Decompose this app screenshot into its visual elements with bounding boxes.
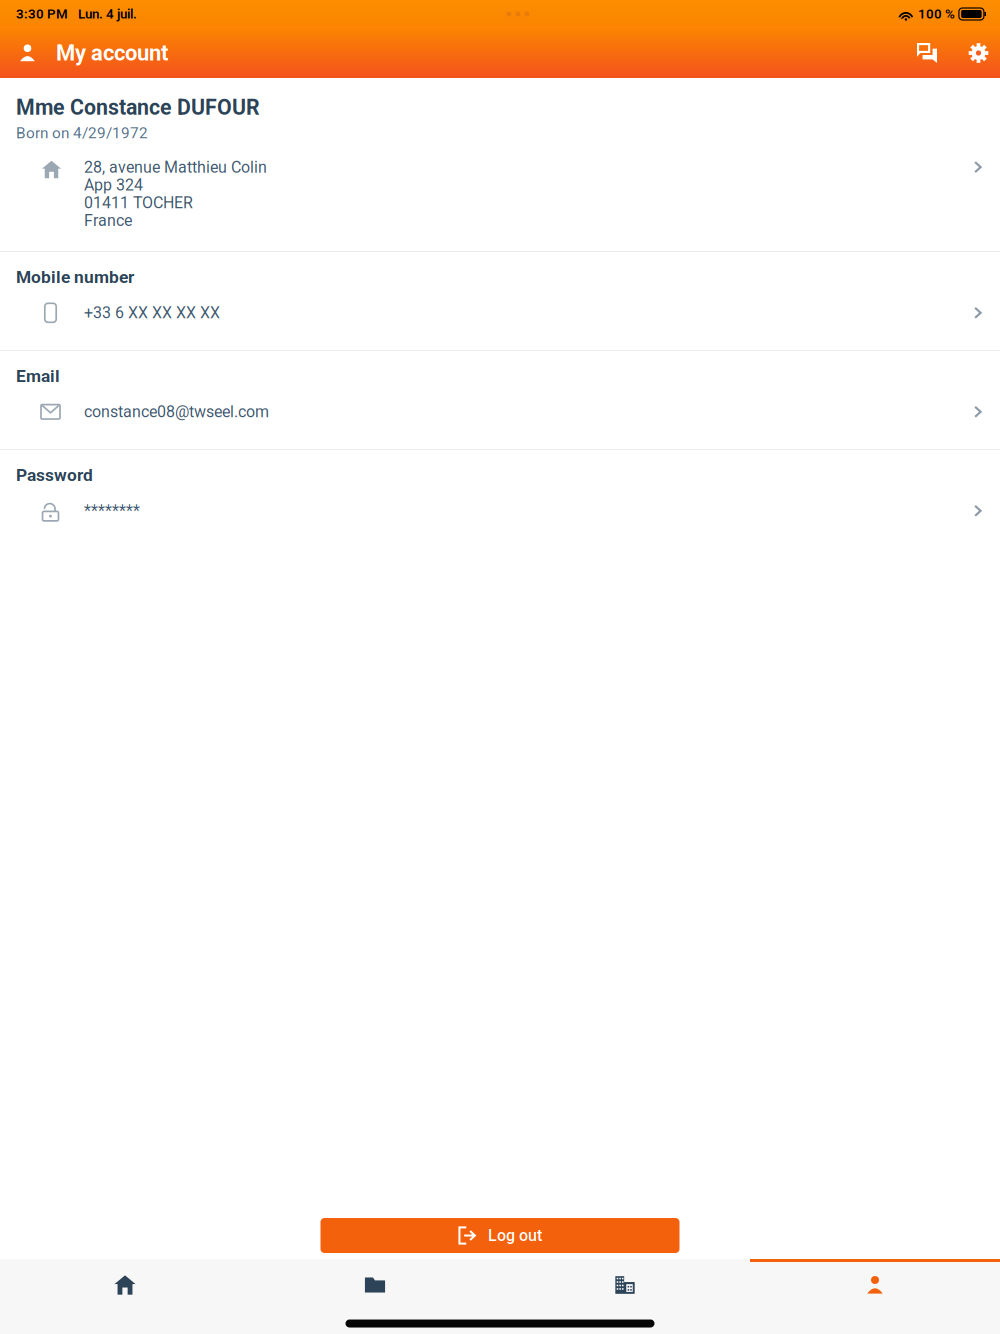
staticText: Password xyxy=(16,465,93,485)
staticText: 01411 TOCHER xyxy=(84,193,193,212)
staticText: France xyxy=(84,211,132,230)
staticText: Mobile number xyxy=(16,267,134,287)
staticText: 28, avenue Matthieu Colin xyxy=(84,158,267,177)
button[interactable]: Log out xyxy=(320,1218,679,1253)
staticText: constance08@twseel.com xyxy=(84,402,269,421)
staticText: 3:30 PM xyxy=(16,6,68,22)
staticText: +33 6 XX XX XX XX xyxy=(84,303,220,322)
button[interactable]: Password xyxy=(0,450,1000,548)
staticText: App 324 xyxy=(84,176,143,195)
button[interactable]: Settings xyxy=(957,28,1000,78)
button[interactable]: Home xyxy=(0,1259,250,1311)
button[interactable]: Email xyxy=(0,351,1000,449)
button[interactable]: 28, avenue Matthieu Colin xyxy=(0,142,1000,230)
staticText: Email xyxy=(16,366,60,386)
staticText: Lun. 4 juil. xyxy=(78,6,137,22)
staticText: Log out xyxy=(488,1226,542,1245)
button[interactable]: Documents xyxy=(250,1259,500,1311)
staticText: ******** xyxy=(84,501,140,520)
staticText: My account xyxy=(56,40,168,66)
button[interactable]: Mobile number xyxy=(0,252,1000,350)
button[interactable]: Messages xyxy=(897,28,957,78)
button[interactable]: My account xyxy=(750,1259,1000,1311)
button[interactable]: Company xyxy=(500,1259,750,1311)
staticText: Mme Constance DUFOUR xyxy=(16,95,260,120)
staticText: Born on 4/29/1972 xyxy=(16,124,148,142)
staticText: 100 % xyxy=(918,6,955,22)
